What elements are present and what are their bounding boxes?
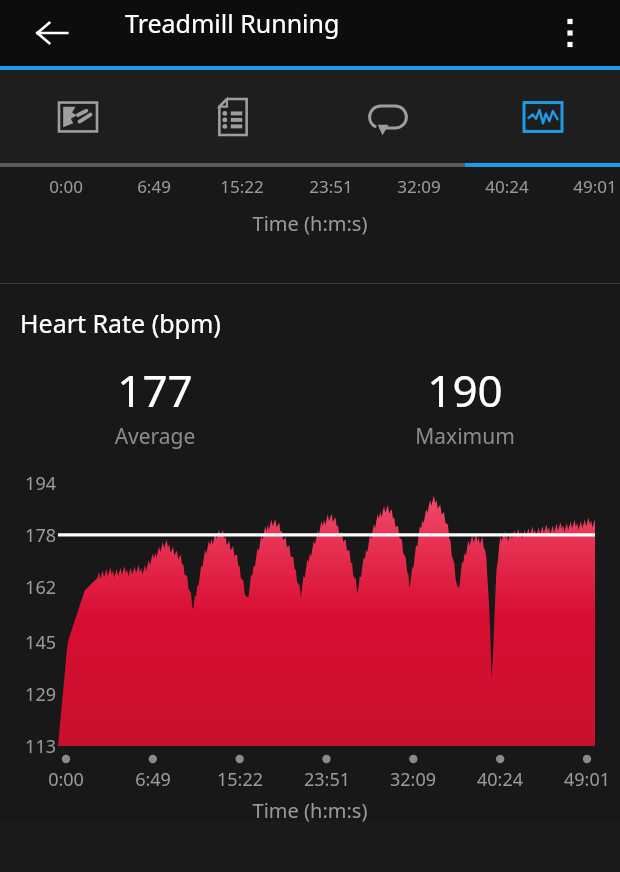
- staticText: 162: [16, 575, 56, 600]
- staticText: 49:01: [563, 175, 620, 198]
- staticText: 190: [310, 360, 620, 420]
- staticText: 32:09: [379, 767, 447, 792]
- staticText: 15:22: [206, 767, 274, 792]
- staticText: Average: [0, 422, 310, 451]
- staticText: 23:51: [299, 175, 363, 198]
- staticText: 40:24: [466, 767, 534, 792]
- staticText: Time (h:m:s): [0, 210, 620, 237]
- staticText: Heart Rate (bpm): [20, 306, 221, 340]
- staticText: 145: [16, 630, 56, 655]
- staticText: 0:00: [32, 767, 100, 792]
- staticText: 177: [0, 360, 310, 420]
- staticText: 6:49: [119, 767, 187, 792]
- staticText: 23:51: [293, 767, 361, 792]
- staticText: Time (h:m:s): [0, 797, 620, 824]
- button[interactable]: Back: [20, 0, 84, 66]
- staticText: 49:01: [553, 767, 620, 792]
- staticText: 6:49: [122, 175, 186, 198]
- staticText: 0:00: [34, 175, 98, 198]
- button[interactable]: Laps: [310, 70, 465, 163]
- staticText: 32:09: [387, 175, 451, 198]
- staticText: 194: [16, 471, 56, 496]
- staticText: 15:22: [210, 175, 274, 198]
- staticText: Treadmill Running: [125, 6, 340, 40]
- staticText: Maximum: [310, 422, 620, 451]
- staticText: 40:24: [475, 175, 539, 198]
- button[interactable]: More options: [542, 0, 598, 66]
- button[interactable]: Charts: [465, 70, 620, 163]
- button[interactable]: Map: [0, 70, 155, 163]
- button[interactable]: Summary: [155, 70, 310, 163]
- staticText: 113: [16, 734, 56, 759]
- staticText: 178: [16, 523, 56, 548]
- staticText: 129: [16, 682, 56, 707]
